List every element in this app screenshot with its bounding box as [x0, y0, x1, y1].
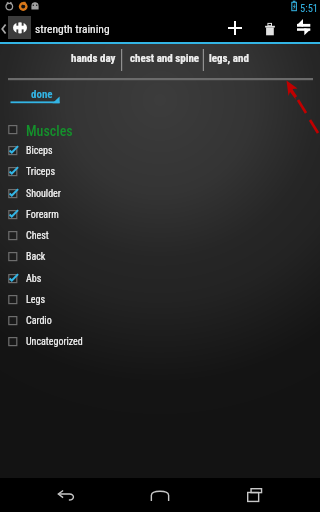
button[interactable]: Home — [132, 478, 188, 512]
staticText: Uncategorized — [26, 336, 83, 348]
button[interactable]: Uncategorized — [0, 337, 320, 358]
button[interactable]: Back — [38, 478, 94, 512]
button[interactable]: Abs — [0, 274, 320, 295]
staticText: 5:51 — [300, 2, 319, 14]
button[interactable] — [122, 44, 203, 78]
staticText: hands day — [71, 52, 116, 65]
button[interactable]: Cardio — [0, 316, 320, 337]
button[interactable]: Chest — [0, 231, 320, 252]
button[interactable]: Biceps — [0, 146, 320, 167]
staticText: Shoulder — [26, 188, 61, 200]
button[interactable]: Triceps — [0, 167, 320, 188]
staticText: Biceps — [26, 145, 53, 157]
button[interactable]: Muscles — [0, 125, 320, 146]
staticText: Abs — [26, 273, 42, 285]
staticText: Legs — [26, 294, 45, 306]
button[interactable]: Delete — [251, 15, 288, 42]
button[interactable]: Forearm — [0, 210, 320, 231]
button[interactable]: Recents — [226, 478, 282, 512]
staticText: Forearm — [26, 209, 59, 221]
button[interactable]: Back — [0, 252, 320, 273]
staticText: done — [31, 88, 53, 101]
staticText: chest and spine — [130, 52, 200, 65]
staticText: Triceps — [26, 166, 55, 178]
button[interactable]: Shoulder — [0, 189, 320, 210]
staticText: Muscles — [26, 123, 73, 139]
button[interactable]: done — [8, 85, 62, 106]
staticText: Chest — [26, 230, 49, 242]
button[interactable] — [204, 44, 320, 78]
staticText: strength training — [35, 22, 110, 35]
staticText: Back — [26, 251, 46, 263]
button[interactable]: Up: strength training — [0, 14, 120, 42]
button[interactable]: Swap — [288, 12, 320, 40]
button[interactable]: Add — [216, 14, 253, 42]
staticText: legs, and — [209, 52, 249, 65]
button[interactable] — [0, 44, 121, 78]
staticText: Cardio — [26, 315, 52, 327]
button[interactable]: Legs — [0, 295, 320, 316]
